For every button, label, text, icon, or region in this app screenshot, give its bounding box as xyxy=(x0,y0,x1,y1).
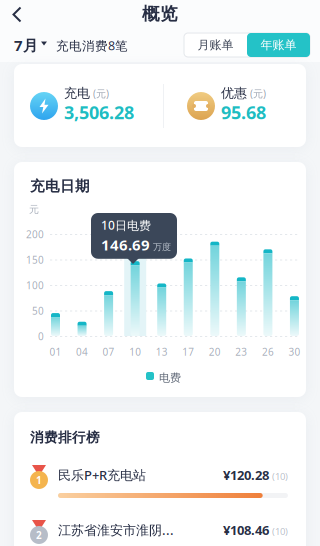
staticText: ¥120.28 xyxy=(223,466,269,484)
staticText: (元) xyxy=(93,87,109,100)
staticText: 10 xyxy=(129,345,141,359)
staticText: 元 xyxy=(29,203,39,216)
staticText: 充电日期 xyxy=(30,177,90,195)
staticText: (10) xyxy=(272,470,288,483)
staticText: 万度 xyxy=(153,241,171,253)
staticText: (元) xyxy=(250,87,266,100)
staticText: 概览 xyxy=(142,3,178,25)
staticText: 07 xyxy=(103,345,115,359)
staticText: 7月 xyxy=(14,35,38,55)
staticText: 95.68 xyxy=(221,100,266,124)
staticText: 消费排行榜 xyxy=(30,429,100,446)
staticText: 50 xyxy=(32,304,44,318)
staticText: 年账单 xyxy=(260,37,296,52)
staticText: 150 xyxy=(26,253,44,267)
staticText: 04 xyxy=(76,345,88,359)
staticText: (10) xyxy=(272,525,288,538)
staticText: 江苏省淮安市淮阴... xyxy=(58,521,174,539)
staticText: 146.69 xyxy=(101,234,150,255)
staticText: 2 xyxy=(36,528,42,542)
staticText: 100 xyxy=(26,278,44,292)
staticText: 23 xyxy=(235,345,247,359)
staticText: 13 xyxy=(156,345,168,359)
staticText: 1 xyxy=(36,473,42,487)
staticText: 月账单 xyxy=(197,37,233,52)
staticText: 民乐P+R充电站 xyxy=(58,466,146,484)
staticText: 30 xyxy=(288,345,300,359)
staticText: 17 xyxy=(182,345,194,359)
staticText: 优惠 xyxy=(221,85,247,101)
staticText: 充电 xyxy=(64,85,90,101)
staticText: 充电消费8笔 xyxy=(56,37,128,54)
staticText: 20 xyxy=(209,345,221,359)
staticText: 0 xyxy=(38,329,44,343)
staticText: 26 xyxy=(262,345,274,359)
staticText: 电费 xyxy=(159,371,181,385)
staticText: 200 xyxy=(26,227,44,241)
staticText: 01 xyxy=(49,345,61,359)
staticText: 3,506.28 xyxy=(64,100,134,124)
staticText: ¥108.46 xyxy=(223,521,269,539)
staticText: 10日电费 xyxy=(101,217,151,233)
